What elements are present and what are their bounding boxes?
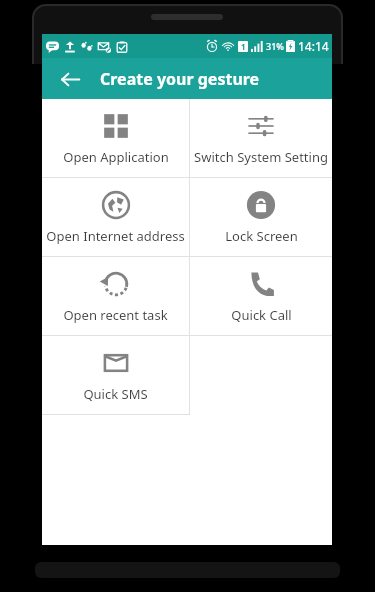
staticText: Create your gesture xyxy=(100,68,260,90)
staticText: 1 xyxy=(241,41,246,52)
button[interactable]: Open recent task xyxy=(42,257,189,335)
button[interactable]: Open Internet address xyxy=(42,178,189,256)
button[interactable]: Open Application xyxy=(42,99,189,177)
staticText: Switch System Setting xyxy=(194,148,328,166)
button[interactable]: Switch System Setting xyxy=(190,99,332,177)
button[interactable]: Lock Screen xyxy=(190,178,332,256)
staticText: Open Application xyxy=(63,148,169,166)
staticText: Open Internet address xyxy=(46,227,185,245)
staticText: 31% xyxy=(266,40,284,52)
staticText: Open recent task xyxy=(63,306,168,324)
button[interactable]: Quick SMS xyxy=(42,336,189,414)
staticText: 14:14 xyxy=(298,38,329,54)
staticText: Quick SMS xyxy=(83,385,148,403)
button[interactable]: Quick Call xyxy=(190,257,332,335)
button[interactable]: Back xyxy=(50,59,90,99)
staticText: Lock Screen xyxy=(225,227,298,245)
staticText: Quick Call xyxy=(231,306,292,324)
